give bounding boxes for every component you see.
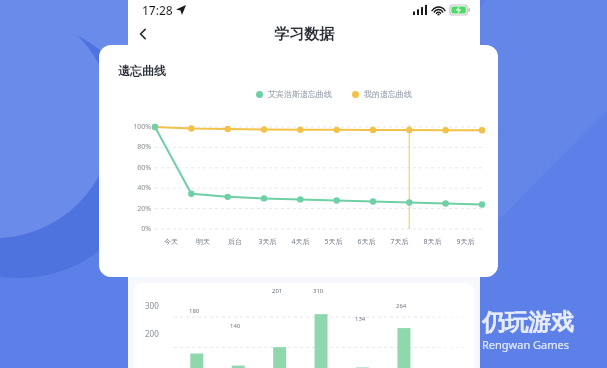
staticText: 仍玩游戏 xyxy=(482,308,574,337)
staticText: 180 xyxy=(189,307,200,315)
staticText: 遗忘曲线 xyxy=(118,63,166,78)
staticText: 后台 xyxy=(228,237,242,246)
staticText: 8天后 xyxy=(423,237,442,247)
staticText: 80% xyxy=(113,142,151,152)
button[interactable]: Back xyxy=(128,20,158,48)
staticText: 300 xyxy=(145,300,159,311)
staticText: 134 xyxy=(355,315,366,323)
staticText: 艾宾浩斯遗忘曲线 xyxy=(268,89,332,99)
staticText: 310 xyxy=(313,287,324,295)
staticText: 明天 xyxy=(196,237,210,246)
staticText: 今天 xyxy=(164,237,178,246)
staticText: 7天后 xyxy=(390,237,409,247)
staticText: 9天后 xyxy=(456,237,475,247)
button[interactable]: 遗忘曲线 xyxy=(99,45,498,277)
staticText: 学习数据 xyxy=(274,25,334,44)
staticText: 100% xyxy=(113,122,151,132)
staticText: 3天后 xyxy=(258,237,277,247)
staticText: 4天后 xyxy=(291,237,310,247)
button[interactable]: 300 xyxy=(134,283,474,368)
staticText: Rengwan Games xyxy=(482,337,570,352)
staticText: 60% xyxy=(113,163,151,173)
staticText: 140 xyxy=(230,322,241,330)
staticText: 我的遗忘曲线 xyxy=(364,89,412,99)
staticText: 201 xyxy=(272,287,283,295)
staticText: 6天后 xyxy=(357,237,376,247)
staticText: 5天后 xyxy=(324,237,343,247)
staticText: 264 xyxy=(396,302,407,310)
staticText: 0% xyxy=(113,224,151,234)
staticText: 20% xyxy=(113,204,151,214)
staticText: 40% xyxy=(113,183,151,193)
staticText: 200 xyxy=(145,328,159,339)
staticText: 17:28 xyxy=(142,2,173,18)
